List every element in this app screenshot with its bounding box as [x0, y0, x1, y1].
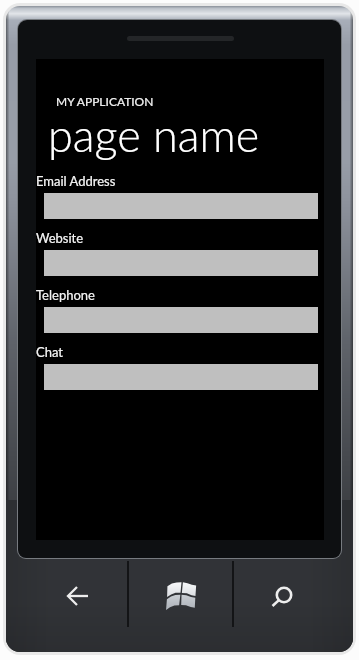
staticText: Email Address [36, 173, 116, 189]
staticText: Website [36, 230, 84, 246]
staticText: page name [48, 108, 260, 162]
button[interactable]: Start [129, 558, 232, 652]
button[interactable]: Search [234, 558, 353, 652]
staticText: MY APPLICATION [56, 94, 154, 108]
button[interactable]: Back [6, 558, 127, 652]
staticText: Telephone [36, 287, 95, 303]
staticText: Chat [36, 344, 63, 360]
